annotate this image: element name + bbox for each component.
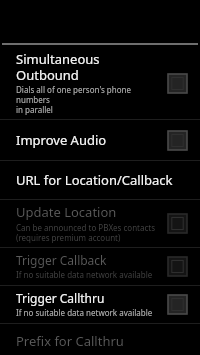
button[interactable]: Toggle checkbox (164, 253, 190, 279)
button[interactable]: Prefix for Callthru (0, 324, 200, 355)
staticText: Prefix for Callthru (16, 332, 124, 347)
button[interactable]: Toggle checkbox (164, 210, 190, 236)
staticText: Can be announced to PBXes contacts (requ… (16, 222, 156, 243)
staticText: If no suitable data network available (16, 269, 153, 280)
staticText: Dials all of one person's phone numbers … (16, 84, 160, 115)
button[interactable]: Toggle checkbox (164, 291, 190, 317)
button[interactable]: Toggle checkbox (164, 127, 190, 153)
button[interactable]: Trigger Callthru (0, 286, 200, 323)
staticText: URL for Location/Callback (16, 171, 173, 189)
button[interactable]: Improve Audio (0, 120, 200, 160)
staticText: Improve Audio (16, 131, 107, 149)
button[interactable]: Trigger Callback (0, 248, 200, 285)
staticText: Trigger Callthru (16, 290, 105, 306)
button[interactable]: URL for Location/Callback (0, 161, 200, 199)
staticText: Update Location (16, 203, 117, 221)
staticText: Trigger Callback (16, 252, 107, 268)
staticText: Simultaneous Outbound (16, 50, 160, 83)
button[interactable]: Toggle checkbox (164, 70, 190, 96)
staticText: If no suitable data network available (16, 307, 153, 318)
button[interactable]: Simultaneous Outbound (0, 47, 200, 119)
button[interactable]: Update Location (0, 200, 200, 247)
